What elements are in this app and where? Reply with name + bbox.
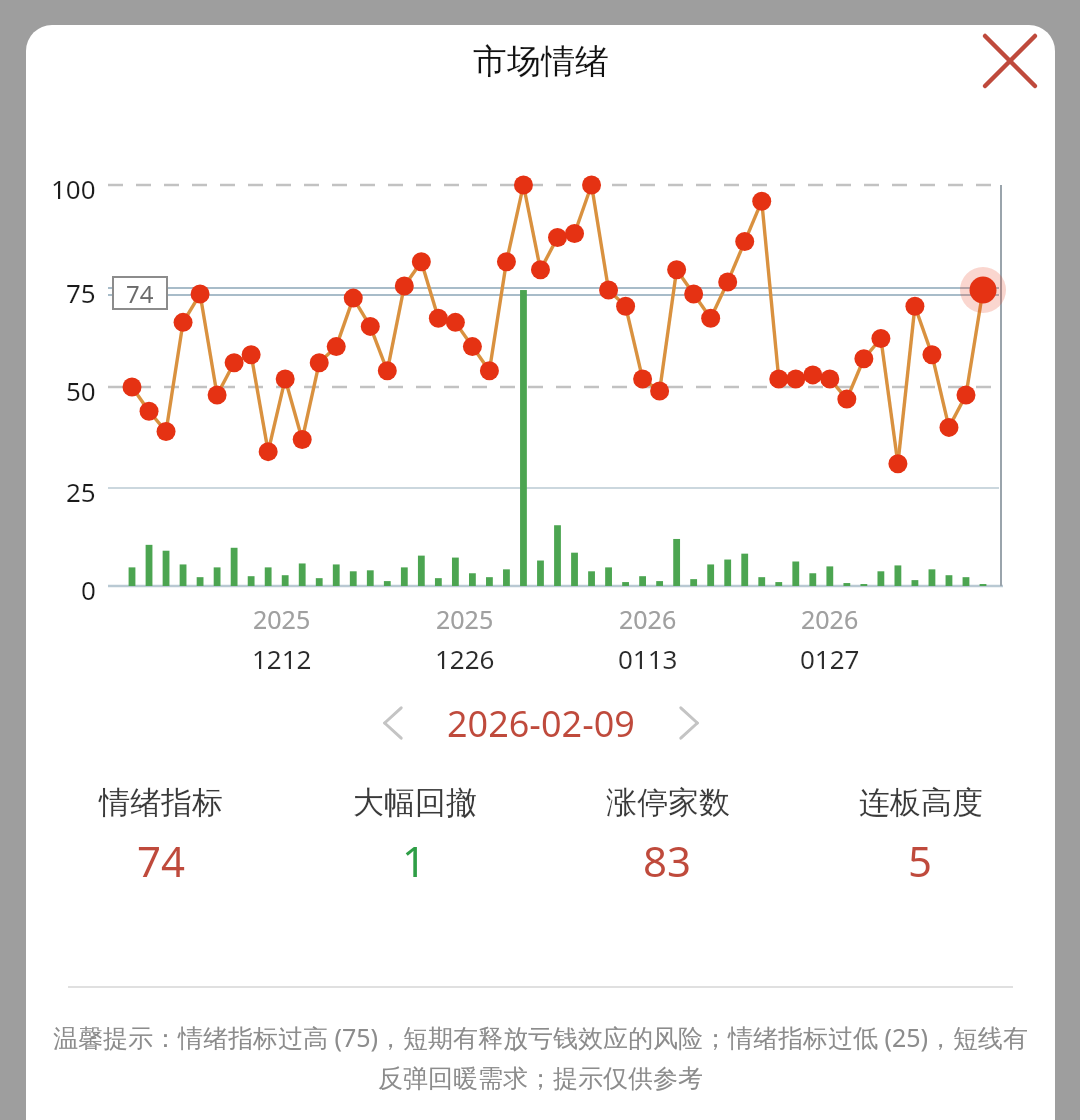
button[interactable]: 连板高度 [794, 783, 1047, 889]
button[interactable]: Next day [659, 694, 717, 752]
staticText: 1 [402, 832, 427, 889]
button[interactable]: 情绪指标 [34, 783, 288, 889]
staticText: 2026-02-09 [447, 699, 635, 748]
staticText: 74 [137, 832, 186, 889]
staticText: 0113 [618, 641, 678, 676]
staticText: 2025 [253, 602, 311, 636]
staticText: 大幅回撤 [353, 783, 477, 822]
staticText: 5 [908, 832, 933, 889]
staticText: 83 [643, 832, 692, 889]
staticText: 0 [81, 572, 96, 607]
staticText: 2026 [619, 602, 677, 636]
staticText: 75 [66, 275, 96, 310]
staticText: 2025 [436, 602, 494, 636]
staticText: 74 [126, 277, 154, 310]
staticText: 50 [66, 373, 96, 408]
staticText: 1226 [435, 641, 495, 676]
staticText: 2026 [801, 602, 859, 636]
button[interactable]: 涨停家数 [541, 783, 794, 889]
staticText: 1212 [252, 641, 312, 676]
button[interactable]: Previous day [365, 694, 423, 752]
staticText: 温馨提示：情绪指标过高 (75)，短期有释放亏钱效应的风险；情绪指标过低 (25… [50, 1020, 1031, 1094]
staticText: 0127 [800, 641, 860, 676]
staticText: 连板高度 [859, 783, 983, 822]
staticText: 情绪指标 [99, 783, 223, 822]
staticText: 市场情绪 [473, 40, 609, 83]
button[interactable]: 大幅回撤 [288, 783, 541, 889]
button[interactable]: 2026-02-09 [447, 699, 635, 748]
staticText: 25 [66, 474, 96, 509]
staticText: 100 [51, 171, 96, 206]
staticText: 涨停家数 [606, 783, 730, 822]
button[interactable]: Close [975, 26, 1045, 96]
